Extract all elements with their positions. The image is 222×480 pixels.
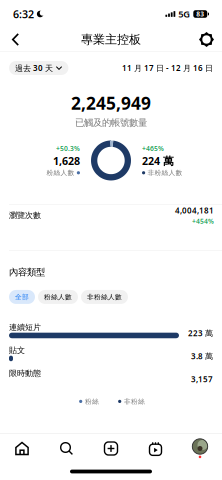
staticText: 223 萬: [188, 328, 213, 338]
staticText: 瀏覽次數: [9, 210, 41, 220]
staticText: 5G: [178, 8, 190, 20]
staticText: 專業主控板: [81, 32, 141, 47]
button[interactable]: Back: [4, 28, 27, 51]
button[interactable]: Profile: [181, 435, 219, 462]
staticText: 限時動態: [9, 368, 41, 378]
staticText: 4,004,181: [175, 205, 214, 216]
staticText: 貼文: [9, 345, 25, 355]
staticText: 1,628: [53, 154, 80, 168]
button[interactable]: 過去 30 天: [9, 61, 68, 75]
button[interactable]: 瀏覽次數: [0, 205, 222, 250]
staticText: +50.3%: [56, 144, 80, 153]
staticText: 內容類型: [9, 266, 45, 278]
staticText: 非粉絲人數: [147, 169, 182, 177]
staticText: 3,157: [191, 374, 213, 384]
button[interactable]: Create: [92, 435, 130, 462]
button[interactable]: Search: [47, 435, 85, 462]
button[interactable]: 全部: [9, 290, 35, 304]
button[interactable]: Settings: [195, 28, 218, 51]
staticText: 非粉絲人數: [87, 293, 122, 301]
staticText: +454%: [192, 217, 214, 226]
staticText: 粉絲人數: [44, 293, 72, 301]
staticText: 粉絲: [85, 397, 99, 405]
staticText: +465%: [142, 144, 164, 153]
staticText: 83: [196, 10, 204, 18]
staticText: 過去 30 天: [15, 63, 53, 73]
staticText: 6:32: [13, 7, 34, 21]
staticText: 224 萬: [142, 154, 174, 168]
button[interactable]: Reels: [136, 435, 174, 462]
button[interactable]: Home: [3, 435, 41, 462]
staticText: 3.8 萬: [191, 351, 213, 361]
staticText: 非粉絲: [124, 397, 145, 405]
staticText: 粉絲人數: [47, 169, 75, 177]
staticText: 11 月 17 日 - 12 月 16 日: [122, 63, 213, 73]
staticText: 已觸及的帳號數量: [75, 117, 147, 128]
staticText: 全部: [15, 293, 29, 301]
staticText: 2,245,949: [71, 91, 151, 114]
button[interactable]: 粉絲人數: [38, 290, 78, 304]
staticText: 連續短片: [9, 322, 41, 332]
button[interactable]: 非粉絲人數: [81, 290, 128, 304]
